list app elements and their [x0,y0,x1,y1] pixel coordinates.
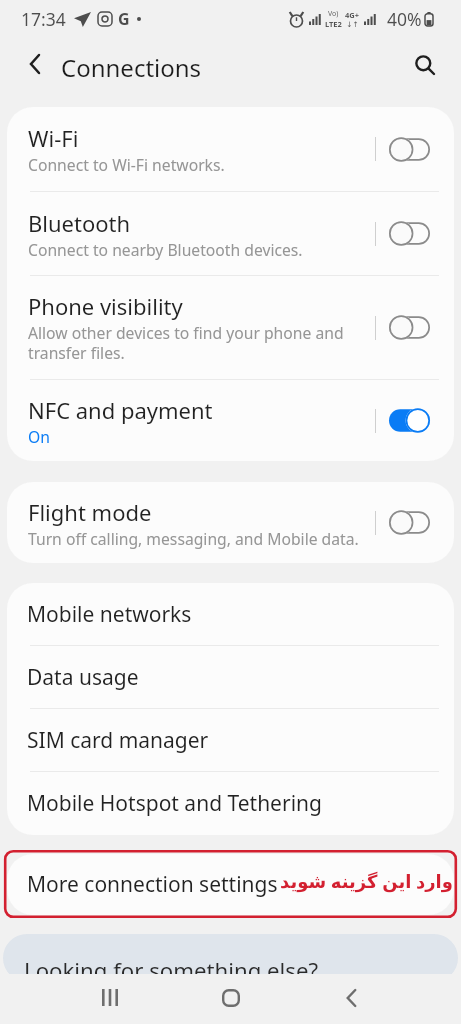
button[interactable]: Mobile Hotspot and Tethering [7,772,454,835]
staticText: Turn off calling, messaging, and Mobile … [28,528,359,549]
staticText: LTE2 [325,19,342,29]
staticText: On [28,426,50,447]
staticText: More connection settings [27,870,278,899]
staticText: Connect to Wi-Fi networks. [28,154,225,175]
staticText: 4G+ [345,10,360,20]
button[interactable]: More connection settings [7,854,454,915]
staticText: Phone visibility [28,291,183,321]
staticText: 40% [387,7,422,31]
button[interactable]: Data usage [7,646,454,709]
button[interactable]: NFC and payment [7,380,454,461]
button[interactable]: SIM card manager [7,709,454,772]
staticText: Connect to nearby Bluetooth devices. [28,239,303,260]
button[interactable]: Looking for something else? [3,934,458,982]
button[interactable]: Home [199,974,263,1021]
staticText: Bluetooth [28,208,131,238]
button[interactable]: Search [403,43,447,87]
button[interactable]: Recent apps [78,974,142,1021]
staticText: ↓↑ [346,20,359,29]
button[interactable]: Flight mode [7,482,454,563]
staticText: Data usage [27,663,139,692]
button[interactable]: Back [319,974,383,1021]
button[interactable]: Phone visibility [7,276,454,380]
button[interactable]: Mobile networks [7,583,454,646]
staticText: NFC and payment [28,395,213,425]
button[interactable]: Back [13,42,57,86]
staticText: Vo) [328,9,339,19]
staticText: وارد این گزینه شوید [280,869,453,894]
staticText: Flight mode [28,497,152,527]
staticText: Allow other devices to find your phone a… [28,322,369,364]
button[interactable]: Bluetooth [7,192,454,276]
button[interactable]: Wi-Fi [7,107,454,192]
staticText: G [118,8,130,30]
staticText: Connections [61,51,202,84]
staticText: Looking for something else? [24,955,319,982]
staticText: Mobile Hotspot and Tethering [27,789,322,818]
staticText: Wi-Fi [28,123,79,153]
staticText: 17:34 [21,7,66,31]
staticText: SIM card manager [27,726,209,755]
staticText: Mobile networks [27,600,192,629]
